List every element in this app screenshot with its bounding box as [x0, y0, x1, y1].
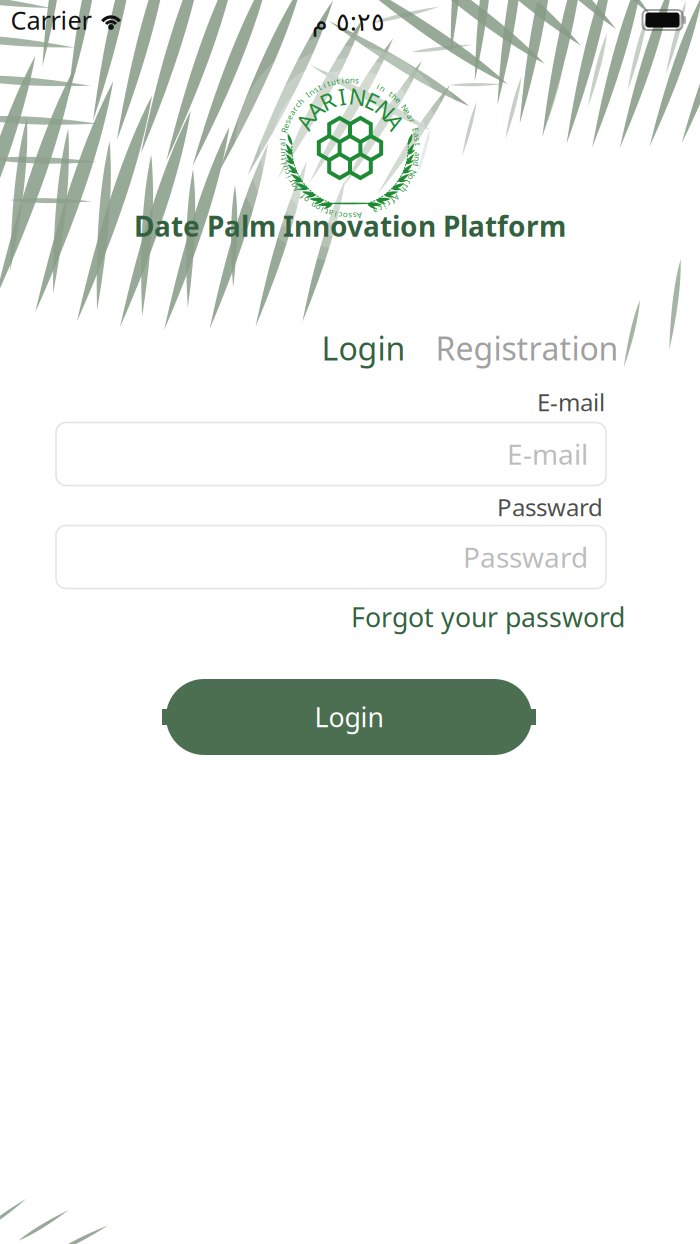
staticText: a [415, 129, 419, 140]
staticText: i [323, 80, 325, 90]
staticText: o [303, 194, 308, 205]
staticText: Carrier [10, 3, 91, 37]
staticText: Passward [497, 491, 603, 523]
staticText: c [379, 203, 383, 214]
staticText: r [289, 176, 292, 187]
staticText: Forgot your password [351, 599, 625, 635]
staticText: s [353, 210, 357, 221]
staticText: u [282, 163, 287, 173]
staticText: t [336, 76, 339, 86]
staticText: s [314, 84, 318, 95]
staticText: c [295, 99, 299, 110]
staticText: i [377, 81, 379, 91]
staticText: o [409, 172, 414, 183]
staticText: s [285, 116, 289, 126]
staticText: i [287, 172, 289, 182]
staticText: n [309, 87, 314, 97]
staticText: r [293, 103, 296, 114]
staticText: t [281, 153, 284, 164]
staticText: o [343, 210, 348, 221]
staticText [298, 188, 300, 198]
staticText [303, 93, 305, 103]
staticText: h [298, 96, 303, 106]
staticText: t [416, 139, 419, 149]
staticText: h [401, 185, 406, 195]
staticText [309, 197, 311, 208]
button[interactable]: Login [317, 323, 409, 373]
staticText: s [348, 211, 352, 221]
staticText: n [380, 83, 385, 94]
staticText: Registration [435, 327, 618, 369]
staticText: A [298, 107, 312, 137]
staticText: e [287, 111, 292, 122]
staticText: n [311, 200, 316, 211]
staticText: e [283, 120, 288, 131]
staticText: I [306, 89, 309, 100]
staticText: N [349, 81, 366, 112]
staticText: c [285, 167, 289, 178]
staticText: t [389, 88, 392, 99]
staticText: r [280, 144, 283, 154]
staticText: r [407, 177, 410, 187]
staticText [417, 144, 419, 154]
staticText: A [357, 210, 362, 221]
staticText: o [345, 75, 350, 85]
staticText: A [388, 107, 402, 137]
staticText [401, 98, 403, 109]
staticText: l [283, 158, 285, 169]
staticText [413, 120, 415, 130]
staticText: N [402, 102, 408, 113]
staticText: Date Palm Innovation Platform [134, 207, 566, 245]
staticText: Login [314, 699, 383, 735]
staticText: a [329, 208, 333, 219]
staticText: u [331, 77, 336, 87]
staticText: i [342, 75, 344, 86]
button[interactable]: Forgot your password [347, 595, 629, 639]
staticText: Login [321, 327, 405, 369]
staticText: I [338, 81, 346, 112]
button[interactable]: Login [160, 678, 538, 756]
staticText: o [315, 202, 320, 213]
staticText: A [293, 184, 298, 195]
staticText: f [301, 191, 304, 202]
staticText: R [321, 86, 335, 116]
staticText [399, 189, 401, 199]
staticText: t [318, 82, 321, 92]
staticText: i [335, 209, 337, 220]
staticText [282, 130, 284, 140]
staticText: E [413, 124, 417, 135]
button[interactable]: Registration [431, 323, 622, 373]
staticText: N [377, 95, 394, 125]
staticText [414, 163, 416, 174]
staticText: a [416, 149, 420, 159]
staticText: a [290, 107, 294, 118]
staticText: r [387, 198, 390, 209]
staticText: g [291, 180, 296, 191]
staticText: i [321, 205, 323, 215]
staticText: a [408, 111, 412, 121]
staticText: t [325, 206, 328, 217]
staticText: n [415, 154, 420, 164]
staticText: s [355, 75, 359, 86]
staticText: t [327, 78, 330, 89]
staticText: e [396, 95, 401, 105]
staticText: r [411, 115, 414, 126]
staticText: f [391, 195, 394, 206]
staticText: c [338, 210, 342, 221]
staticText: ٥:٢٥ م [311, 4, 384, 38]
staticText: a [280, 139, 284, 150]
staticText: A [308, 95, 322, 125]
staticText: R [282, 125, 287, 135]
staticText: u [280, 149, 285, 159]
staticText: t [405, 181, 408, 191]
staticText: E [366, 86, 379, 116]
staticText: s [415, 134, 419, 145]
staticText: l [281, 134, 283, 145]
staticText: e [405, 106, 410, 117]
staticText: d [414, 158, 419, 169]
staticText: E-mail [507, 435, 588, 473]
staticText: A [394, 192, 399, 203]
staticText: n [350, 75, 355, 85]
staticText: E-mail [537, 386, 605, 418]
